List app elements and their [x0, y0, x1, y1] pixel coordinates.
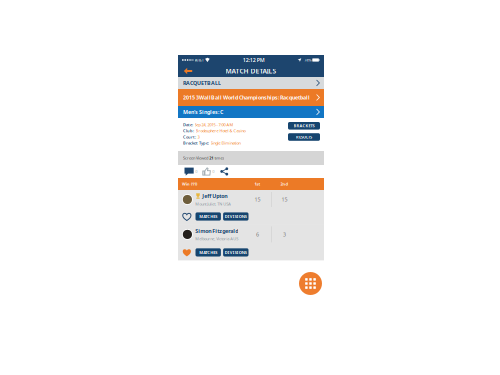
staticText: 0	[212, 169, 214, 174]
staticText: 21	[209, 155, 213, 161]
staticText: 15	[281, 196, 287, 203]
staticText: Mount Juliet, TN USA	[195, 201, 231, 206]
staticText: MATCH DETAILS	[225, 67, 276, 75]
staticText: AT&T	[195, 57, 204, 63]
staticText: 2nd	[280, 181, 288, 187]
staticText: Screen Viewed	[183, 155, 208, 161]
staticText: Date:	[183, 122, 193, 127]
button[interactable]: Comments	[184, 167, 197, 176]
button[interactable]: MATCHES	[195, 248, 221, 256]
staticText: Court:	[183, 134, 196, 139]
button[interactable]: Men's Singles: C	[178, 106, 324, 118]
button[interactable]: DIVISIONS	[223, 248, 248, 256]
button[interactable]: RACQUETBALL	[178, 77, 324, 89]
staticText: Simon Fitzgerald	[195, 227, 238, 234]
staticText: Single Elimination	[211, 140, 241, 146]
button[interactable]: Back	[181, 65, 195, 77]
staticText: RESULTS	[296, 134, 312, 140]
button[interactable]: Unfavorite	[182, 247, 192, 257]
staticText: DIVISIONS	[225, 250, 247, 255]
staticText: BRACKETS	[293, 123, 314, 128]
button[interactable]: Share	[220, 167, 228, 176]
staticText: 2015 3WallBall World Championships: Racq…	[183, 94, 310, 101]
staticText: MATCHES	[199, 214, 217, 219]
staticText: 6	[256, 231, 259, 238]
button[interactable]: More options	[298, 271, 323, 296]
staticText: Jeff Upton	[202, 192, 227, 200]
staticText: 15	[254, 196, 260, 203]
staticText: Men's Singles: C	[183, 108, 223, 116]
button[interactable]: Favorite	[182, 211, 192, 221]
staticText: Melbourne, Victoria AUS	[195, 236, 238, 241]
staticText: Bracket Type:	[183, 140, 209, 146]
staticText: 0	[195, 169, 197, 174]
button[interactable]: RESULTS	[288, 133, 320, 141]
staticText: Sep 24, 2015 - 7:00 AM	[195, 122, 234, 127]
staticText: 3	[198, 134, 200, 139]
staticText: Brodasphere Hotel & Casino	[196, 128, 246, 133]
button[interactable]: MATCHES	[195, 212, 221, 221]
button[interactable]: Likes	[202, 167, 214, 176]
staticText: times	[214, 155, 224, 161]
button[interactable]: 2015 3WallBall World Championships: Racq…	[178, 89, 324, 106]
staticText: RACQUETBALL	[183, 79, 221, 87]
staticText: Win (11)	[182, 181, 197, 187]
staticText: 12:12 PM	[243, 56, 265, 64]
staticText: 74%	[304, 57, 311, 63]
staticText: Club:	[183, 128, 194, 133]
staticText: 1st	[254, 181, 260, 187]
staticText: MATCHES	[199, 250, 217, 255]
staticText: DIVISIONS	[225, 214, 247, 219]
button[interactable]: BRACKETS	[288, 122, 320, 130]
button[interactable]: DIVISIONS	[223, 212, 248, 221]
staticText: 3	[283, 231, 286, 238]
